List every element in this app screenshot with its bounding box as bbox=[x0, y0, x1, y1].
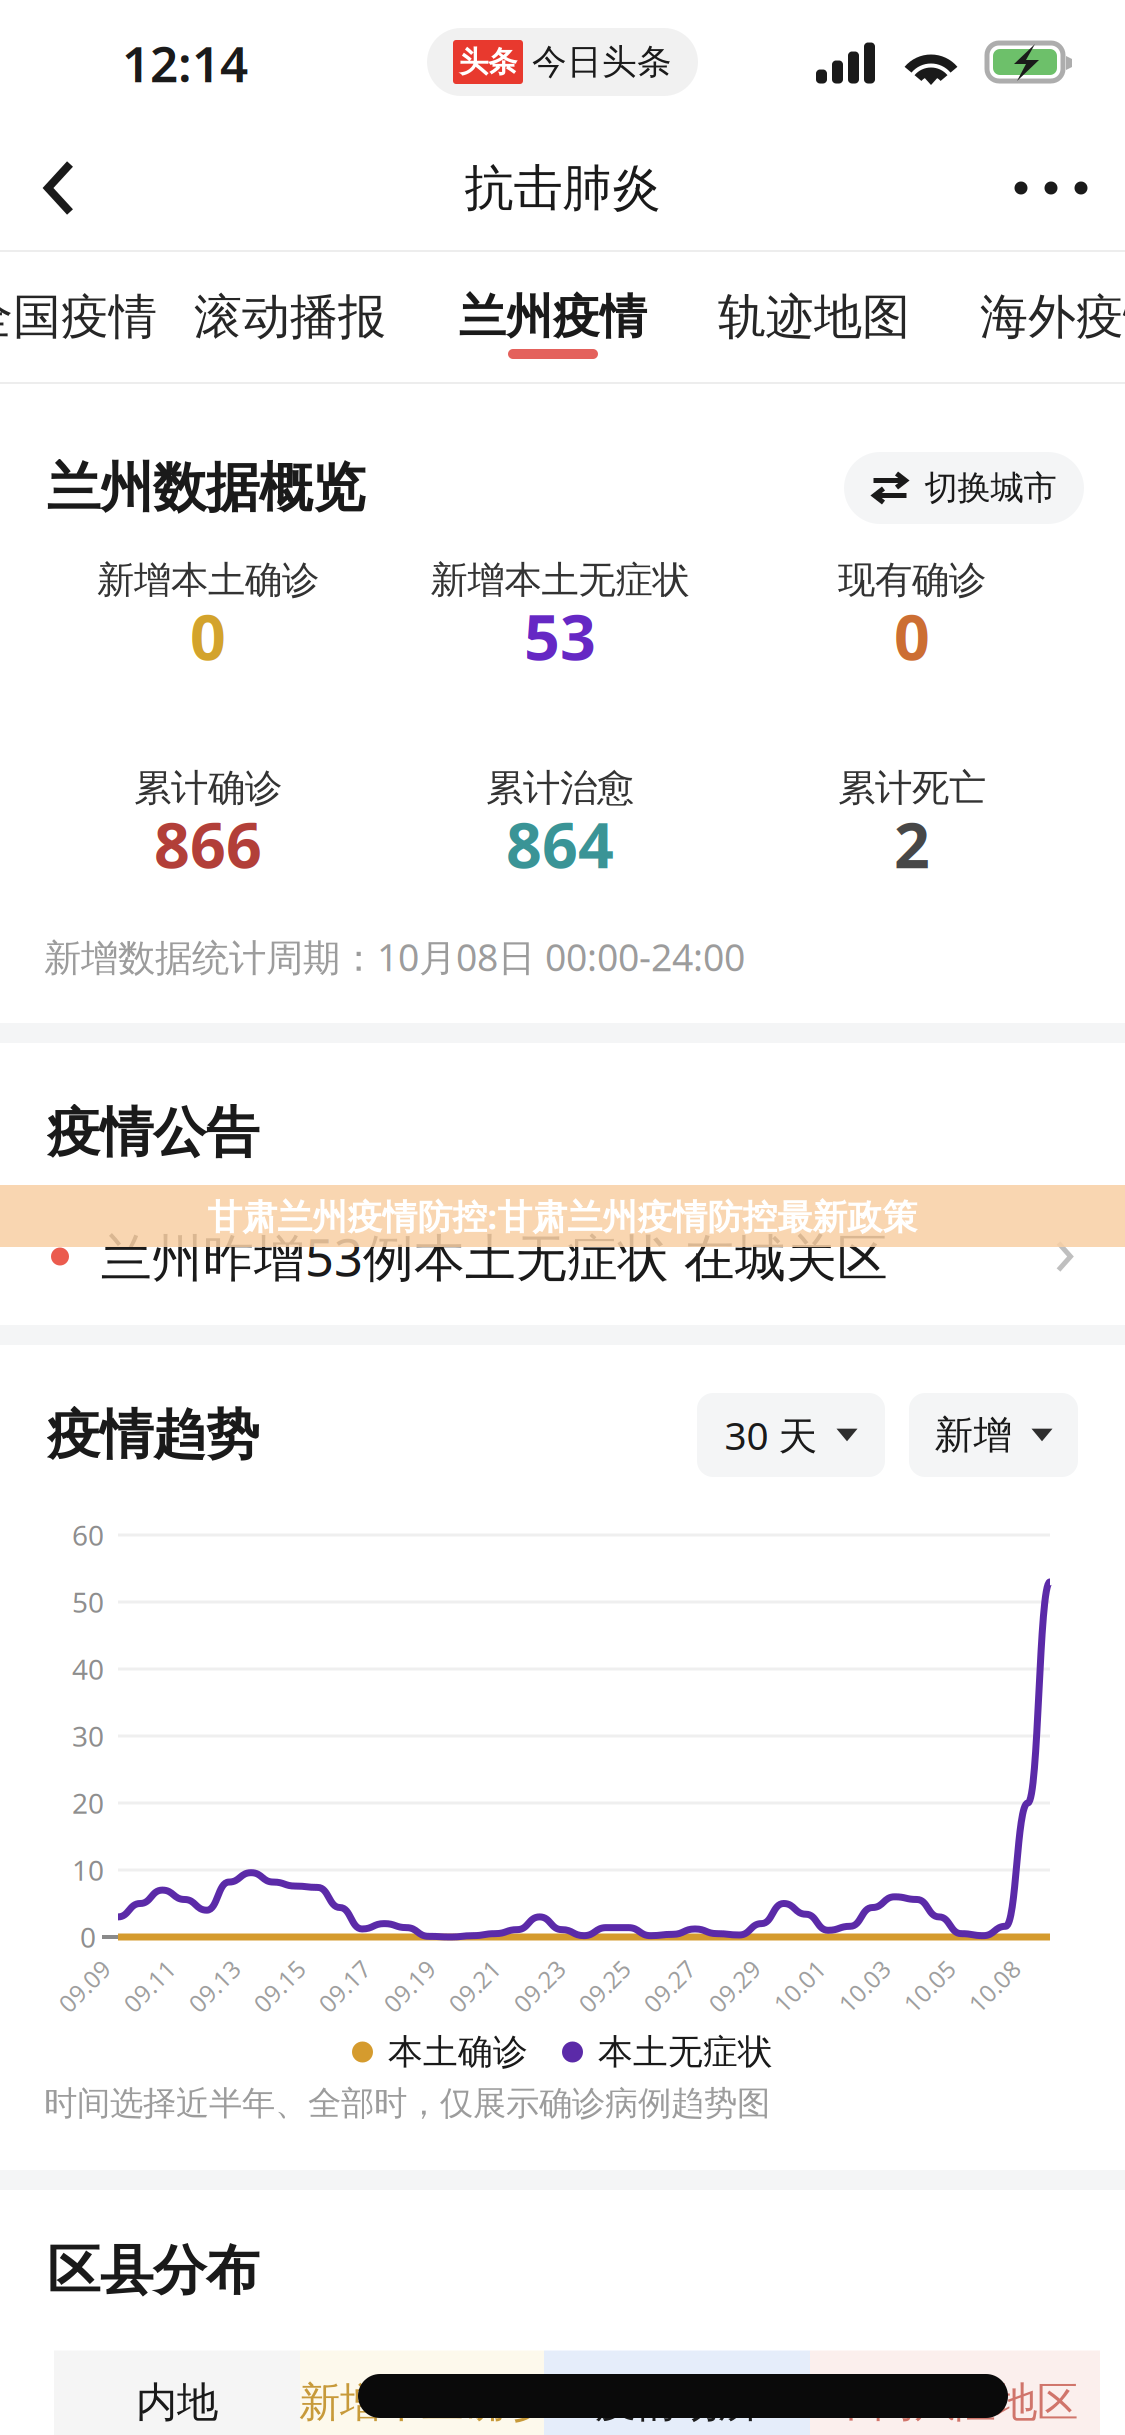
staticText: 新增本土确诊 bbox=[97, 557, 319, 603]
staticText: 全国疫情 bbox=[0, 287, 157, 346]
staticText: 53 bbox=[524, 594, 596, 678]
staticText: 09.27 bbox=[638, 1970, 700, 2002]
staticText: 09.25 bbox=[573, 1970, 635, 2002]
button[interactable]: 滚动播报 bbox=[157, 251, 423, 383]
staticText: 新增数据统计周期：10月08日 00:00-24:00 bbox=[44, 932, 745, 982]
staticText: 2 bbox=[894, 802, 930, 886]
staticText: 10.03 bbox=[833, 1970, 895, 2002]
staticText: 甘肃兰州疫情防控:甘肃兰州疫情防控最新政策 bbox=[207, 1193, 917, 1239]
staticText: 20 bbox=[72, 1784, 104, 1822]
staticText: 本土无症状 bbox=[598, 2031, 773, 2073]
staticText: 10 bbox=[72, 1851, 104, 1889]
staticText: 新增本土确诊 bbox=[299, 2377, 545, 2428]
staticText: 09.19 bbox=[378, 1970, 440, 2002]
staticText: 30 bbox=[72, 1717, 104, 1755]
staticText: 09.11 bbox=[118, 1970, 180, 2002]
staticText: 10.08 bbox=[963, 1970, 1025, 2002]
staticText: 10.01 bbox=[768, 1970, 830, 2002]
staticText: 0 bbox=[190, 594, 226, 678]
button[interactable]: 全国疫情 bbox=[0, 251, 157, 383]
staticText: 09.13 bbox=[183, 1970, 245, 2002]
staticText: 兰州昨增53例本土无症状 在城关区 bbox=[101, 1223, 888, 1290]
staticText: 轨迹地图 bbox=[718, 287, 910, 346]
staticText: 864 bbox=[506, 802, 614, 886]
staticText: 40 bbox=[72, 1650, 104, 1688]
button[interactable]: 新增 bbox=[909, 1393, 1078, 1477]
staticText: 0 bbox=[894, 594, 930, 678]
staticText: 疫情趋势 bbox=[47, 1402, 259, 1468]
staticText: 疫情公告 bbox=[47, 1100, 259, 1165]
staticText: 中高风险地区 bbox=[832, 2377, 1078, 2428]
staticText: 疫情场所 bbox=[595, 2377, 759, 2428]
staticText: 12:14 bbox=[122, 30, 248, 96]
button[interactable]: 轨迹地图 bbox=[683, 251, 945, 383]
staticText: 09.29 bbox=[703, 1970, 765, 2002]
staticText: 内地 bbox=[136, 2377, 218, 2428]
staticText: 本土确诊 bbox=[388, 2031, 528, 2073]
button[interactable]: 新增本土确诊 bbox=[300, 2350, 544, 2435]
staticText: 60 bbox=[72, 1516, 104, 1554]
staticText: 累计治愈 bbox=[486, 765, 634, 811]
staticText: 区县分布 bbox=[47, 2238, 259, 2303]
staticText: 50 bbox=[72, 1583, 104, 1621]
staticText: 新增 bbox=[934, 1411, 1012, 1459]
staticText: 09.17 bbox=[313, 1970, 375, 2002]
staticText: 切换城市 bbox=[924, 467, 1056, 508]
button[interactable]: 返回 bbox=[0, 126, 118, 250]
staticText: 09.21 bbox=[443, 1970, 505, 2002]
staticText: 头条 bbox=[459, 44, 517, 80]
staticText: 兰州数据概览 bbox=[47, 455, 365, 521]
button[interactable]: 疫情场所 bbox=[544, 2350, 810, 2435]
staticText: 30 天 bbox=[724, 1409, 817, 1461]
staticText: 海外疫情 bbox=[980, 287, 1125, 346]
button[interactable]: 30 天 bbox=[697, 1393, 885, 1477]
staticText: 现有确诊 bbox=[838, 557, 986, 603]
button[interactable]: 海外疫情 bbox=[945, 251, 1125, 383]
button[interactable]: 内地 bbox=[54, 2350, 300, 2435]
staticText: 10.05 bbox=[898, 1970, 960, 2002]
staticText: 09.15 bbox=[248, 1970, 310, 2002]
staticText: 今日头条 bbox=[532, 41, 672, 83]
staticText: 0 bbox=[80, 1918, 96, 1956]
staticText: 滚动播报 bbox=[194, 287, 386, 346]
button[interactable]: 兰州疫情 bbox=[423, 251, 683, 383]
staticText: 09.23 bbox=[508, 1970, 570, 2002]
staticText: 兰州疫情 bbox=[459, 288, 647, 346]
staticText: 累计确诊 bbox=[134, 765, 282, 811]
button[interactable]: 中高风险地区 bbox=[810, 2350, 1100, 2435]
button[interactable]: 更多 bbox=[977, 126, 1125, 250]
button[interactable]: 切换城市 bbox=[844, 452, 1084, 524]
staticText: 新增本土无症状 bbox=[430, 557, 689, 603]
staticText: 时间选择近半年、全部时，仅展示确诊病例趋势图 bbox=[44, 2083, 770, 2124]
staticText: 累计死亡 bbox=[838, 765, 986, 811]
staticText: 09.09 bbox=[53, 1970, 115, 2002]
button[interactable]: 兰州昨增53例本土无症状 在城关区 bbox=[0, 1198, 1125, 1314]
staticText: 抗击肺炎 bbox=[464, 158, 660, 218]
staticText: 866 bbox=[154, 802, 262, 886]
